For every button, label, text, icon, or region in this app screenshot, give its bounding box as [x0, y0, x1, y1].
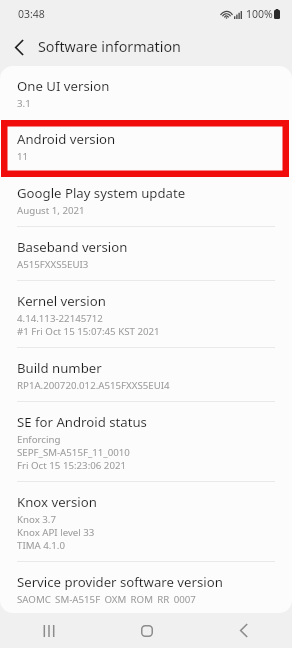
- button[interactable]: Back: [195, 613, 292, 648]
- staticText: RP1A.200720.012.A515FXXS5EUI4: [17, 379, 170, 392]
- staticText: TIMA 4.1.0: [17, 539, 65, 552]
- staticText: SEPF_SM-A515F_11_0010: [17, 446, 130, 459]
- staticText: Kernel version: [17, 292, 106, 310]
- staticText: Build number: [17, 359, 102, 377]
- staticText: 100%: [246, 7, 273, 21]
- staticText: SAOMC_SM-A515F_OXM_ROM_RR_0007: [17, 593, 196, 604]
- staticText: Service provider software version: [17, 573, 223, 591]
- button[interactable]: Service provider software version: [0, 562, 292, 613]
- staticText: Software information: [38, 37, 181, 56]
- staticText: One UI version: [17, 77, 110, 95]
- staticText: Enforcing: [17, 433, 61, 446]
- staticText: 4.14.113-22145712: [17, 312, 103, 325]
- staticText: Google Play system update: [17, 184, 186, 202]
- staticText: Android version: [17, 130, 116, 148]
- button[interactable]: Kernel version: [0, 281, 292, 347]
- button[interactable]: SE for Android status: [0, 402, 292, 481]
- button[interactable]: Google Play system update: [0, 173, 292, 226]
- staticText: 11: [17, 150, 29, 163]
- button[interactable]: One UI version: [0, 66, 292, 119]
- button[interactable]: Home: [98, 613, 195, 648]
- staticText: 3.1: [17, 97, 31, 110]
- staticText: Knox API level 33: [17, 526, 95, 539]
- staticText: 03:48: [18, 7, 45, 21]
- button[interactable]: Recent apps: [0, 613, 98, 648]
- button[interactable]: Android version: [0, 119, 292, 172]
- button[interactable]: Build number: [0, 348, 292, 401]
- staticText: #1 Fri Oct 15 15:07:45 KST 2021: [17, 325, 160, 338]
- staticText: Baseband version: [17, 238, 128, 256]
- staticText: Knox version: [17, 493, 97, 511]
- staticText: Knox 3.7: [17, 513, 56, 526]
- staticText: August 1, 2021: [17, 204, 85, 217]
- staticText: A515FXXS5EUI3: [17, 258, 89, 271]
- button[interactable]: Knox version: [0, 482, 292, 561]
- button[interactable]: Baseband version: [0, 227, 292, 280]
- button[interactable]: Navigate up: [0, 28, 38, 66]
- staticText: SE for Android status: [17, 413, 147, 431]
- staticText: Fri Oct 15 15:23:06 2021: [17, 459, 127, 472]
